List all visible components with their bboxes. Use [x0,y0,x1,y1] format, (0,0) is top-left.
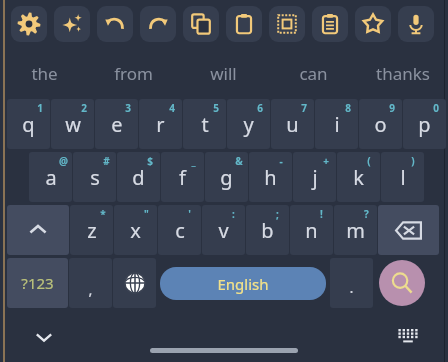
button[interactable]: o [359,99,402,149]
button[interactable]: , [69,258,112,308]
staticText: o [374,111,387,138]
staticText: n [305,217,318,244]
button[interactable]: w [51,99,94,149]
button[interactable]: AI suggestions [54,6,90,42]
staticText: 5 [213,101,219,115]
staticText: ! [320,207,323,221]
button[interactable]: the [0,53,89,93]
staticText: f [179,164,186,191]
button[interactable]: Undo [97,6,133,42]
button[interactable]: k [337,152,380,202]
staticText: 2 [81,101,87,115]
button[interactable]: Stickers [355,6,391,42]
button[interactable]: r [139,99,182,149]
button[interactable]: i [315,99,358,149]
staticText: x [130,217,141,244]
button[interactable]: Switch keyboard [392,321,424,353]
button[interactable]: Copy [183,6,219,42]
button[interactable]: Select all [269,6,305,42]
button[interactable]: v [202,205,245,255]
staticText: ? [364,207,369,221]
staticText: e [111,111,123,138]
staticText: _ [191,154,196,168]
button[interactable]: z [70,205,113,255]
button[interactable]: c [158,205,201,255]
button[interactable]: u [271,99,314,149]
staticText: ) [411,154,415,168]
button[interactable]: . [330,258,373,308]
staticText: ?123 [21,273,54,293]
button[interactable]: g [205,152,248,202]
button[interactable]: Backspace [378,205,439,255]
button[interactable]: t [183,99,226,149]
staticText: y [243,111,254,138]
staticText: 3 [125,101,131,115]
button[interactable]: h [249,152,292,202]
staticText: h [264,164,277,191]
staticText: . [349,277,354,297]
staticText: k [353,164,364,191]
button[interactable]: Shift [7,205,69,255]
button[interactable]: p [403,99,446,149]
staticText: 7 [301,101,307,115]
button[interactable]: l [381,152,424,202]
staticText: from [114,62,153,85]
button[interactable]: n [290,205,333,255]
button[interactable]: e [95,99,138,149]
staticText: - [279,154,283,168]
staticText: can [299,62,328,85]
button[interactable]: English [160,267,326,300]
staticText: u [286,111,299,138]
button[interactable]: s [73,152,116,202]
staticText: + [323,154,329,168]
staticText: ( [367,154,371,168]
button[interactable]: y [227,99,270,149]
staticText: " [144,207,149,221]
button[interactable]: Hide keyboard [28,321,60,353]
staticText: q [22,111,35,138]
button[interactable]: q [7,99,50,149]
staticText: English [217,274,269,294]
staticText: t [201,111,209,138]
button[interactable]: can [268,53,358,93]
staticText: & [235,154,243,168]
button[interactable]: b [246,205,289,255]
button[interactable]: x [114,205,157,255]
staticText: v [218,217,229,244]
button[interactable]: Settings [11,6,47,42]
staticText: * [100,207,106,221]
staticText: 9 [389,101,395,115]
button[interactable]: f [161,152,204,202]
button[interactable]: Search [379,260,425,306]
button[interactable]: Change language [113,258,156,308]
button[interactable]: will [178,53,268,93]
button[interactable]: j [293,152,336,202]
staticText: 4 [169,101,175,115]
button[interactable]: thanks [358,53,448,93]
staticText: j [312,164,318,191]
staticText: d [132,164,145,191]
button[interactable]: Voice input [398,6,434,42]
staticText: p [418,111,431,138]
staticText: ' [188,207,191,221]
button[interactable]: ?123 [7,258,68,308]
staticText: : [232,207,235,221]
staticText: , [88,279,93,299]
button[interactable]: m [334,205,377,255]
button[interactable]: Paste [312,6,348,42]
button[interactable]: d [117,152,160,202]
staticText: m [346,217,365,244]
staticText: # [103,154,110,168]
staticText: s [90,164,100,191]
button[interactable]: a [29,152,72,202]
button[interactable]: from [89,53,178,93]
button[interactable]: Redo [140,6,176,42]
button[interactable]: Clipboard [226,6,262,42]
staticText: will [210,62,237,85]
staticText: 6 [257,101,263,115]
staticText: b [261,217,274,244]
staticText: z [87,217,97,244]
staticText: l [400,164,406,191]
staticText: 0 [433,101,439,115]
staticText: $ [147,154,153,168]
